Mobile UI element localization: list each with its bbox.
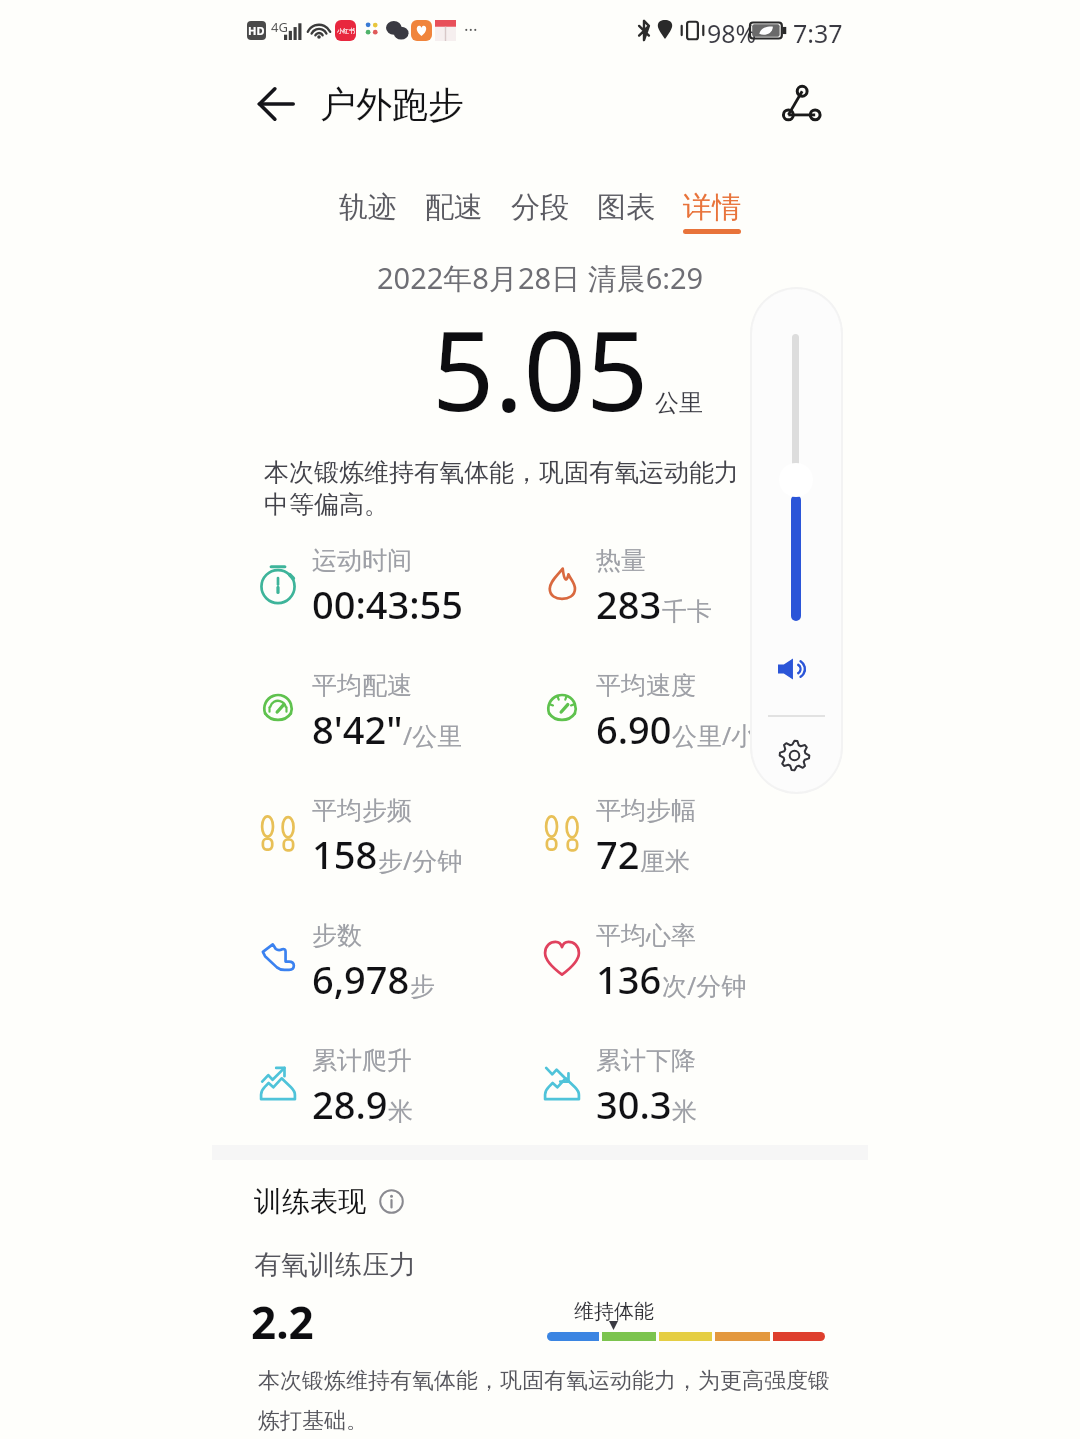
staticText: 8'42" <box>312 703 403 755</box>
staticText: 小红书 <box>337 27 355 35</box>
button[interactable]: 平均心率 <box>540 920 747 1005</box>
button[interactable]: 训练表现 <box>254 1184 404 1219</box>
staticText: 5.05 <box>432 294 649 442</box>
button[interactable]: 累计爬升 <box>256 1045 413 1130</box>
button[interactable]: 热量 <box>540 545 712 630</box>
staticText: 步/分钟 <box>378 843 463 877</box>
staticText: 公里 <box>655 388 703 418</box>
staticText: 步数 <box>312 920 362 951</box>
staticText: 平均步幅 <box>596 795 696 826</box>
staticText: /公里 <box>403 718 463 752</box>
button[interactable]: 轨迹 <box>339 189 397 229</box>
staticText: 28.9 <box>312 1078 388 1130</box>
staticText: 户外跑步 <box>320 82 464 127</box>
button[interactable]: 平均步频 <box>256 795 463 880</box>
staticText: 累计下降 <box>596 1045 696 1076</box>
staticText: 本次锻炼维持有氧体能，巩固有氧运动能力，为更高强度锻 <box>258 1367 830 1395</box>
button[interactable]: Back <box>248 76 304 132</box>
staticText: 炼打基础。 <box>258 1407 368 1435</box>
staticText: 98% <box>707 16 757 50</box>
staticText: ··· <box>464 18 478 41</box>
button[interactable]: 步数 <box>256 920 435 1005</box>
staticText: 4G <box>271 18 288 36</box>
staticText: 7:37 <box>793 16 843 50</box>
other: Info <box>379 1189 404 1214</box>
staticText: 2.2 <box>251 1292 314 1352</box>
staticText: 公里/小 <box>672 718 757 752</box>
button[interactable]: 详情 <box>683 189 741 234</box>
staticText: 训练表现 <box>254 1184 366 1219</box>
staticText: 72 <box>596 828 640 880</box>
button[interactable]: 平均配速 <box>256 670 463 755</box>
staticText: 6.90 <box>596 703 672 755</box>
staticText: 热量 <box>596 545 646 576</box>
button[interactable]: 图表 <box>597 189 655 229</box>
staticText: 运动时间 <box>312 545 412 576</box>
staticText: 平均配速 <box>312 670 412 701</box>
staticText: 有氧训练压力 <box>254 1248 416 1282</box>
staticText: 轨迹 <box>339 189 397 226</box>
staticText: 2022年8月28日 清晨6:29 <box>377 258 704 298</box>
staticText: 厘米 <box>640 846 690 877</box>
staticText: 平均速度 <box>596 670 696 701</box>
staticText: 累计爬升 <box>312 1045 412 1076</box>
staticText: 配速 <box>425 189 483 226</box>
staticText: 步 <box>410 971 435 1002</box>
staticText: 维持体能 <box>574 1299 654 1324</box>
staticText: 米 <box>388 1096 413 1127</box>
staticText: 平均心率 <box>596 920 696 951</box>
staticText: 283 <box>596 578 662 630</box>
staticText: 158 <box>312 828 378 880</box>
staticText: 30.3 <box>596 1078 672 1130</box>
button[interactable]: Share <box>768 74 828 134</box>
staticText: HD <box>248 23 265 38</box>
button[interactable]: 分段 <box>511 189 569 229</box>
button[interactable]: 平均速度 <box>540 670 757 755</box>
staticText: 千卡 <box>662 596 712 627</box>
staticText: 136 <box>596 953 662 1005</box>
button[interactable]: Settings <box>776 739 813 772</box>
staticText: 平均步频 <box>312 795 412 826</box>
staticText: 详情 <box>683 189 741 226</box>
button[interactable]: 配速 <box>425 189 483 229</box>
button[interactable]: 运动时间 <box>256 545 464 630</box>
staticText: 分段 <box>511 189 569 226</box>
staticText: 图表 <box>597 189 655 226</box>
staticText: 6,978 <box>312 953 410 1005</box>
button[interactable]: 平均步幅 <box>540 795 696 880</box>
staticText: 中等偏高。 <box>264 489 389 520</box>
staticText: 次/分钟 <box>662 968 747 1002</box>
staticText: 00:43:55 <box>312 578 464 630</box>
button[interactable]: 累计下降 <box>540 1045 697 1130</box>
staticText: 本次锻炼维持有氧体能，巩固有氧运动能力， <box>264 457 764 488</box>
button[interactable]: Volume <box>778 658 812 680</box>
staticText: 米 <box>672 1096 697 1127</box>
